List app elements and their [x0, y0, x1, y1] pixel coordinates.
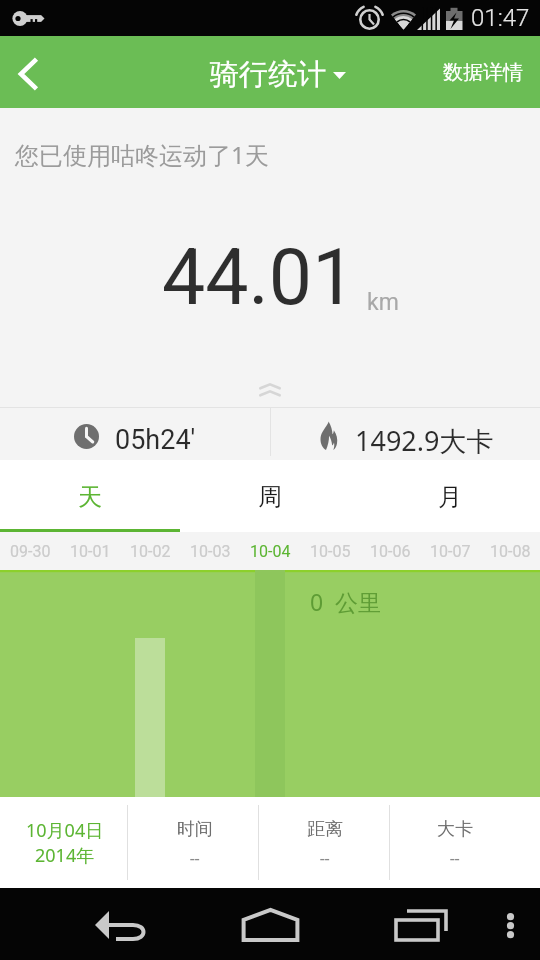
button[interactable]: 数据详情 — [429, 36, 540, 108]
button[interactable]: 骑行统计 — [203, 36, 359, 108]
button[interactable]: 10-05 — [300, 532, 360, 570]
staticText: 10-01 — [70, 542, 111, 561]
staticText: 01:47 — [471, 4, 530, 32]
button[interactable]: 月 — [360, 460, 540, 532]
button[interactable]: 10-04 — [240, 532, 300, 570]
button[interactable]: 05h24' — [0, 408, 270, 456]
staticText: 时间 — [177, 818, 213, 841]
staticText: 月 — [438, 482, 462, 512]
staticText: 10-07 — [430, 542, 471, 561]
button[interactable]: Back — [80, 888, 162, 960]
staticText: 10-04 — [250, 542, 291, 561]
button[interactable]: 天 — [0, 460, 180, 532]
staticText: km — [367, 289, 399, 316]
staticText: 周 — [258, 482, 282, 512]
staticText: 10-02 — [130, 542, 171, 561]
button[interactable]: Recent apps — [382, 888, 462, 960]
staticText: -- — [320, 849, 330, 869]
staticText: 1492.9大卡 — [355, 422, 494, 459]
staticText: 10-08 — [490, 542, 531, 561]
staticText: 骑行统计 — [210, 56, 326, 93]
staticText: -- — [190, 849, 200, 869]
button[interactable]: More options — [484, 888, 540, 960]
button[interactable]: 10-01 — [60, 532, 120, 570]
button[interactable]: 10-03 — [180, 532, 240, 570]
button[interactable]: 时间 — [130, 797, 260, 888]
staticText: 0 公里 — [310, 586, 382, 617]
staticText: 大卡 — [437, 818, 473, 841]
button[interactable]: 09-30 — [0, 532, 60, 570]
button[interactable]: 大卡 — [390, 797, 520, 888]
button[interactable]: 周 — [180, 460, 360, 532]
staticText: 10-06 — [370, 542, 411, 561]
button[interactable]: 10月04日 — [0, 797, 130, 888]
staticText: 10-05 — [310, 542, 351, 561]
staticText: 44.01 — [162, 233, 356, 323]
button[interactable]: 10-02 — [120, 532, 180, 570]
staticText: 2014年 — [35, 843, 95, 868]
staticText: 09-30 — [10, 542, 51, 561]
button[interactable]: 1492.9大卡 — [271, 408, 540, 456]
button[interactable]: 10-08 — [480, 532, 540, 570]
button[interactable]: Home — [230, 888, 310, 960]
staticText: 距离 — [307, 818, 343, 841]
staticText: 10月04日 — [26, 818, 104, 843]
staticText: 数据详情 — [443, 60, 523, 85]
staticText: 05h24' — [115, 424, 196, 456]
staticText: 天 — [78, 482, 102, 512]
staticText: 10-03 — [190, 542, 231, 561]
button[interactable]: 10-06 — [360, 532, 420, 570]
button[interactable]: 距离 — [260, 797, 390, 888]
staticText: 您已使用咕咚运动了1天 — [15, 138, 269, 171]
button[interactable]: 10-07 — [420, 532, 480, 570]
staticText: -- — [450, 849, 460, 869]
button[interactable]: Back — [0, 36, 56, 108]
